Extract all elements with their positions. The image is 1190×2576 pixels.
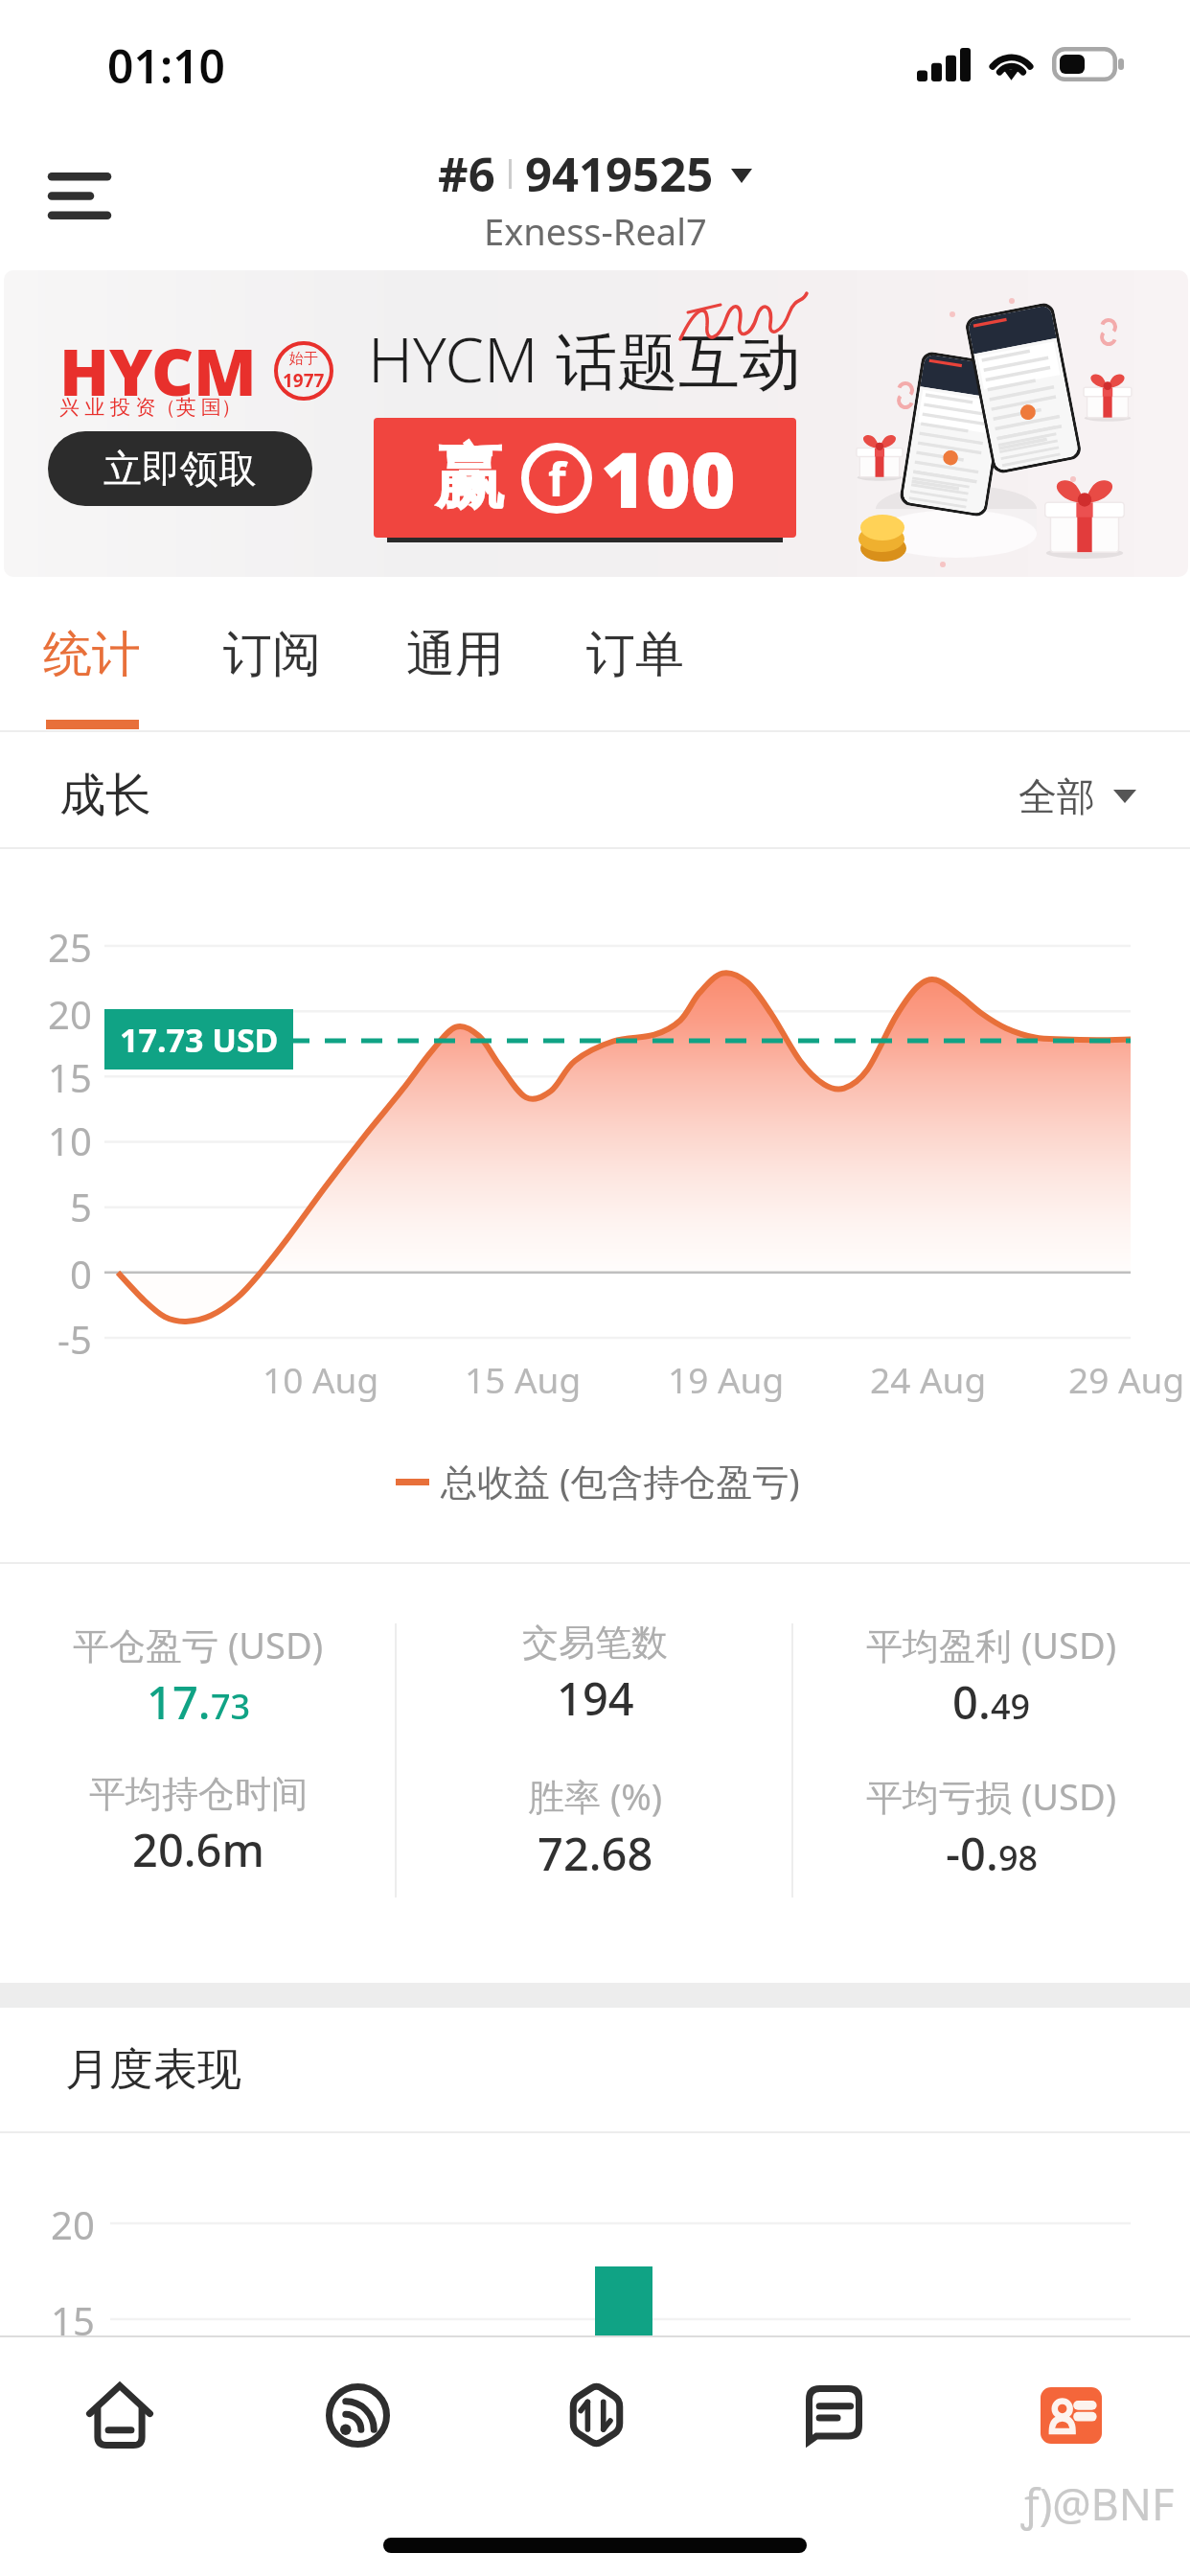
staticText: 98: [998, 1834, 1039, 1881]
staticText: 平均盈利 (USD): [866, 1620, 1117, 1669]
staticText: 订阅: [223, 624, 321, 685]
staticText: 20: [51, 2198, 95, 2248]
staticText: 0: [70, 1248, 92, 1298]
staticText: #6: [438, 142, 495, 206]
staticText: 29 Aug: [1068, 1355, 1185, 1403]
button[interactable]: 订阅: [180, 577, 362, 732]
staticText: 194: [557, 1667, 634, 1729]
staticText: 话题互动: [556, 324, 801, 402]
staticText: 通用: [406, 624, 504, 685]
staticText: 10 Aug: [263, 1355, 379, 1403]
staticText: 20: [48, 988, 92, 1038]
staticText: 15: [51, 2294, 95, 2344]
staticText: 24 Aug: [870, 1355, 987, 1403]
staticText: 73: [211, 1683, 251, 1730]
button[interactable]: 通用: [363, 577, 545, 732]
staticText: 胜率 (%): [528, 1771, 663, 1821]
staticText: 25: [48, 921, 92, 971]
staticText: 总收益 (包含持仓盈亏): [441, 1456, 800, 1506]
button[interactable]: Promotion banner: [4, 270, 1188, 577]
staticText: 交易笔数: [522, 1620, 668, 1666]
staticText: ƒ)@BNF: [1021, 2474, 1175, 2533]
button[interactable]: 订单: [543, 577, 725, 732]
staticText: 01:10: [107, 34, 226, 97]
staticText: 0.: [952, 1671, 991, 1733]
staticText: 立即领取: [103, 445, 257, 493]
button[interactable]: Profile: [952, 2335, 1190, 2486]
staticText: -0.: [946, 1823, 998, 1884]
staticText: 全部: [1018, 772, 1095, 820]
button[interactable]: Menu: [25, 141, 134, 250]
staticText: 统计: [43, 624, 141, 685]
staticText: f: [548, 448, 566, 510]
button[interactable]: 统计: [0, 577, 182, 732]
staticText: 49: [991, 1683, 1031, 1730]
staticText: 平均亏损 (USD): [866, 1771, 1117, 1821]
button[interactable]: 全部: [1018, 772, 1136, 820]
staticText: 成长: [59, 767, 151, 824]
staticText: HYCM: [368, 316, 538, 402]
staticText: 17.73 USD: [120, 1018, 279, 1062]
staticText: 兴 业 投 资（英 国）: [59, 393, 241, 421]
staticText: 100: [601, 425, 736, 530]
button[interactable]: Signals: [239, 2335, 477, 2486]
staticText: 始于: [289, 350, 318, 368]
staticText: 72.68: [538, 1823, 653, 1884]
staticText: 赢: [434, 433, 505, 522]
staticText: 平仓盈亏 (USD): [73, 1620, 324, 1669]
button[interactable]: Trade: [477, 2335, 715, 2486]
staticText: 月度表现: [65, 2042, 241, 2098]
staticText: HYCM: [59, 326, 257, 415]
staticText: Exness-Real7: [484, 206, 707, 256]
button[interactable]: #6: [438, 142, 752, 256]
staticText: -5: [57, 1313, 92, 1363]
button[interactable]: Chat: [715, 2335, 952, 2486]
staticText: 17.: [147, 1671, 211, 1733]
staticText: 15 Aug: [465, 1355, 582, 1403]
staticText: 10: [48, 1115, 92, 1164]
button[interactable]: Home: [0, 2335, 239, 2486]
button[interactable]: 立即领取: [48, 431, 312, 506]
staticText: 平均持仓时间: [89, 1771, 308, 1817]
staticText: 1977: [283, 368, 325, 393]
staticText: 19 Aug: [668, 1355, 785, 1403]
staticText: 订单: [586, 624, 684, 685]
staticText: 15: [48, 1051, 92, 1101]
staticText: 20.6m: [132, 1819, 264, 1880]
staticText: 5: [70, 1181, 92, 1230]
staticText: 9419525: [525, 142, 714, 206]
